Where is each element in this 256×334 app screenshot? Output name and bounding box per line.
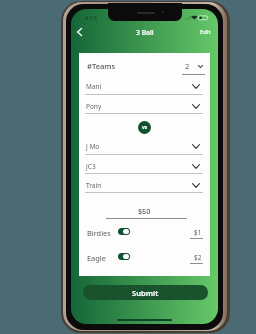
button[interactable]: 2 — [185, 61, 190, 71]
button[interactable]: $2 — [194, 253, 202, 262]
button[interactable]: Submit — [83, 285, 208, 300]
button[interactable]: Toggle Eagle — [118, 253, 130, 260]
staticText: Birdies — [87, 228, 111, 238]
button[interactable]: J Mo — [79, 137, 210, 155]
staticText: $2 — [194, 253, 202, 262]
button[interactable]: Birdies — [87, 228, 111, 238]
button[interactable]: Back — [73, 26, 85, 38]
staticText: #Teams — [87, 61, 116, 71]
staticText: Mani — [86, 82, 102, 91]
staticText: vs — [142, 124, 148, 131]
button[interactable]: Edit — [197, 26, 213, 38]
staticText: J Mo — [86, 142, 100, 151]
button[interactable]: $1 — [194, 228, 202, 237]
staticText: Train — [86, 181, 102, 190]
staticText: JC3 — [86, 162, 96, 171]
button[interactable]: Pony — [79, 97, 210, 115]
staticText: $50 — [138, 206, 151, 216]
button[interactable]: JC3 — [79, 157, 210, 175]
staticText: Eagle — [87, 253, 106, 263]
staticText: Pony — [86, 102, 102, 111]
button[interactable]: Mani — [79, 77, 210, 95]
staticText: Submit — [132, 288, 159, 298]
staticText: Edit — [200, 28, 211, 36]
staticText: 3 Ball — [136, 28, 154, 37]
staticText: 6:15 — [85, 14, 97, 22]
staticText: $1 — [194, 228, 202, 237]
button[interactable]: versus — [138, 121, 151, 134]
button[interactable]: #Teams — [87, 61, 116, 71]
button[interactable]: Toggle Birdies — [118, 228, 130, 235]
staticText: 2 — [185, 61, 190, 71]
button[interactable]: Train — [79, 176, 210, 194]
button[interactable]: Eagle — [87, 253, 106, 263]
